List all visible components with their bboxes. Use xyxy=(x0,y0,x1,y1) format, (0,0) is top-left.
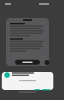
button[interactable]: Confirm xyxy=(42,89,50,90)
button[interactable] xyxy=(15,60,40,65)
button[interactable]: Close xyxy=(44,60,49,65)
button[interactable]: Dismiss xyxy=(35,89,40,90)
